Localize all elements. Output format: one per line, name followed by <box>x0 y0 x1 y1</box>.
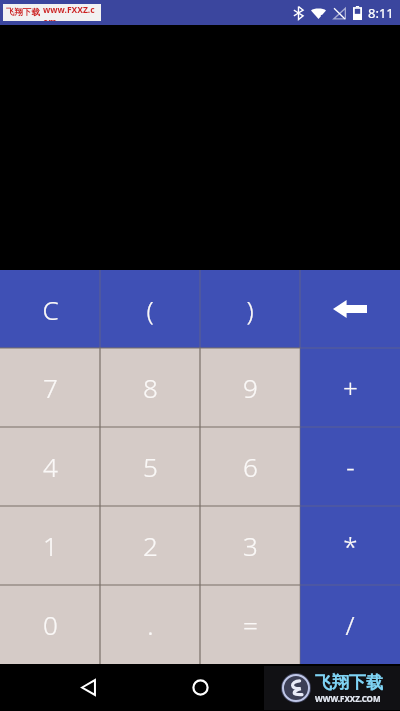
button[interactable]: ( <box>100 270 200 348</box>
staticText: www.FXXZ.com <box>43 4 98 21</box>
button[interactable]: Backspace <box>300 270 400 348</box>
staticText: C <box>42 292 59 327</box>
staticText: 8 <box>143 370 158 405</box>
button[interactable]: . <box>100 585 200 664</box>
staticText: 5 <box>143 449 158 484</box>
button[interactable]: Home <box>172 664 228 711</box>
button[interactable]: 6 <box>200 427 300 506</box>
staticText: . <box>147 607 154 642</box>
button[interactable]: + <box>300 348 400 427</box>
button[interactable]: 3 <box>200 506 300 585</box>
button[interactable]: - <box>300 427 400 506</box>
button[interactable]: 8 <box>100 348 200 427</box>
staticText: 飞翔下载 <box>315 672 383 693</box>
staticText: - <box>346 449 355 484</box>
button[interactable]: 1 <box>0 506 100 585</box>
staticText: + <box>343 370 358 405</box>
button[interactable]: 4 <box>0 427 100 506</box>
button[interactable]: 5 <box>100 427 200 506</box>
button[interactable]: 2 <box>100 506 200 585</box>
button[interactable]: / <box>300 585 400 664</box>
staticText: WWW.FXXZ.COM <box>315 693 381 704</box>
staticText: 2 <box>143 528 158 563</box>
button[interactable]: ) <box>200 270 300 348</box>
button[interactable]: 0 <box>0 585 100 664</box>
staticText: ( <box>146 292 154 327</box>
staticText: 1 <box>43 528 58 563</box>
staticText: 4 <box>43 449 58 484</box>
button[interactable]: C <box>0 270 100 348</box>
staticText: 9 <box>243 370 258 405</box>
staticText: = <box>243 607 258 642</box>
staticText: * <box>343 528 358 563</box>
staticText: 3 <box>243 528 258 563</box>
button[interactable]: 9 <box>200 348 300 427</box>
other: Backspace <box>333 298 367 320</box>
staticText: 飞翔下载 <box>6 7 40 18</box>
button[interactable]: 7 <box>0 348 100 427</box>
button[interactable]: Back <box>64 664 112 711</box>
staticText: 7 <box>43 370 58 405</box>
button[interactable]: * <box>300 506 400 585</box>
button[interactable]: = <box>200 585 300 664</box>
staticText: 8:11 <box>368 4 394 22</box>
staticText: / <box>345 607 355 642</box>
staticText: 6 <box>243 449 258 484</box>
staticText: ) <box>246 292 254 327</box>
staticText: 0 <box>43 607 58 642</box>
